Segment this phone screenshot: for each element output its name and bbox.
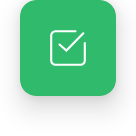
button[interactable]: Tasks app icon	[20, 0, 116, 96]
